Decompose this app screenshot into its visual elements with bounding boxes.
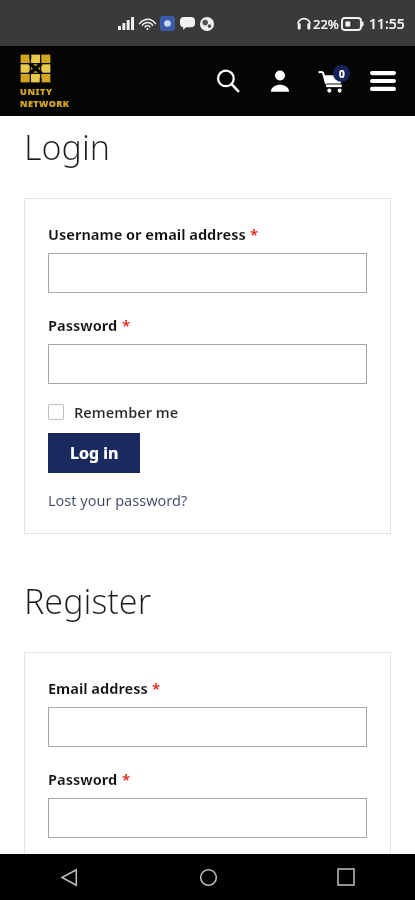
button[interactable]: Lost your password? — [48, 490, 188, 510]
staticText: Email address — [48, 678, 148, 698]
button[interactable]: Log in — [48, 433, 140, 473]
staticText: Password — [48, 315, 118, 335]
button[interactable]: Account — [262, 63, 298, 99]
staticText: * — [250, 224, 259, 244]
staticText: Login — [24, 124, 111, 170]
button[interactable] — [48, 344, 367, 384]
button[interactable]: Unity Network home — [18, 52, 72, 111]
staticText: NETWORK — [20, 97, 70, 109]
button[interactable]: Home — [139, 854, 277, 900]
button[interactable] — [48, 798, 367, 838]
staticText: 0 — [339, 67, 345, 81]
staticText: Password — [48, 769, 118, 789]
button[interactable]: Back — [0, 854, 139, 900]
staticText: 22% — [313, 15, 339, 33]
staticText: 11:55 — [369, 14, 405, 33]
staticText: Log in — [70, 442, 119, 464]
staticText: * — [152, 678, 161, 698]
staticText: * — [122, 769, 131, 789]
button[interactable] — [48, 707, 367, 747]
button[interactable]: Recents — [277, 854, 415, 900]
button[interactable]: Menu — [365, 63, 401, 99]
staticText: Register — [24, 578, 152, 624]
staticText: * — [122, 315, 131, 335]
button[interactable]: Search — [210, 63, 246, 99]
button[interactable]: Cart, 0 items — [314, 65, 349, 97]
button[interactable]: Remember me — [48, 402, 179, 422]
staticText: Username or email address — [48, 224, 246, 244]
staticText: UNITY — [20, 85, 53, 97]
button[interactable] — [48, 253, 367, 293]
staticText: Remember me — [74, 402, 179, 422]
